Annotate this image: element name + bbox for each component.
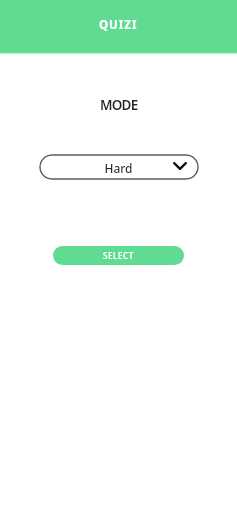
button[interactable]: SELECT <box>53 246 184 265</box>
staticText: SELECT <box>103 250 134 261</box>
staticText: MODE <box>100 96 138 114</box>
staticText: QUIZI <box>99 17 138 33</box>
other: Expand difficulty list <box>173 162 187 170</box>
staticText: Hard <box>104 160 133 176</box>
button[interactable]: Hard <box>39 154 199 180</box>
button[interactable]: QUIZI <box>0 0 237 53</box>
